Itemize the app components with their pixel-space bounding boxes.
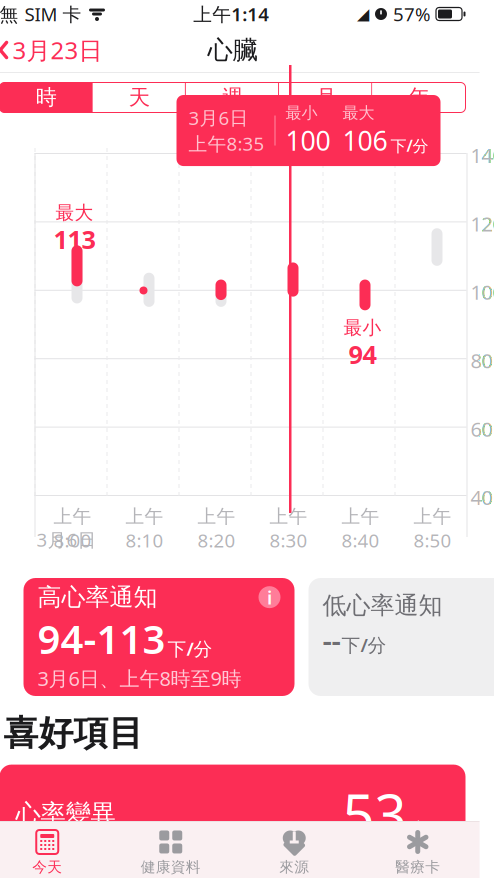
staticText: 113 [53,222,95,256]
staticText: 上午8:50 [413,505,451,553]
staticText: 94-113 [37,612,165,665]
staticText: 140 [470,142,494,169]
staticText: ◢ [357,5,369,23]
staticText: 最小 [343,316,381,339]
button[interactable]: 年 [372,82,465,112]
staticText: i [267,585,272,610]
staticText: 月 [315,84,336,111]
staticText: 60 [470,416,492,442]
staticText: 53 [342,777,406,851]
staticText: 40 [470,484,492,511]
staticText: 120 [470,210,494,237]
button[interactable]: 月 [279,82,372,112]
staticText: 心率變異 [15,798,115,829]
button[interactable]: 週 [186,82,279,112]
staticText: 下/分 [390,135,428,156]
staticText: 最大 [55,201,93,224]
staticText: 上午8:00 [53,505,91,553]
staticText: 3月6日、上午8時至9時 [37,665,241,692]
button[interactable]: 心率變異 [0,765,465,861]
staticText: 低心率通知 [322,591,442,620]
staticText: 57% [393,2,431,26]
staticText: 下/分 [341,632,386,657]
staticText: 今天 [32,858,62,876]
staticText: 心臟 [207,34,257,65]
staticText: 時 [36,84,57,111]
staticText: 健康資料 [141,858,201,876]
staticText: 80 [470,347,492,374]
button[interactable]: 3月23日 [0,28,114,72]
staticText: 上午8:35 [188,131,264,156]
staticText: 最小 [285,103,317,123]
staticText: 年 [408,84,429,111]
staticText: 上午8:20 [197,505,235,553]
staticText: 3月6日 [36,527,96,552]
staticText: 上午8:40 [341,505,379,553]
staticText: 94 [348,337,376,371]
staticText: 無 SIM 卡 [0,2,81,26]
staticText: -- [322,620,340,659]
staticText: 下/分 [167,636,212,661]
button[interactable]: 低心率通知 [308,578,494,696]
staticText: 上午8:30 [269,505,307,553]
staticText: 106 [342,123,387,158]
staticText: 100 [470,279,494,305]
staticText: 100 [285,123,330,158]
staticText: 最大 [342,103,374,123]
staticText: 來源 [279,858,309,876]
button[interactable]: 來源 [232,827,356,878]
button[interactable]: 健康資料 [109,827,232,878]
staticText: 上午1:14 [193,2,269,26]
button[interactable]: 今天 [0,827,109,878]
staticText: 醫療卡 [395,858,440,876]
staticText: 毫秒 [409,818,449,843]
button[interactable]: 高心率通知 [23,578,294,696]
staticText: 上午8:10 [125,505,163,553]
button[interactable]: 天 [93,82,186,112]
staticText: 喜好項目 [3,712,143,755]
button[interactable]: 醫療卡 [356,827,479,878]
staticText: 高心率通知 [37,582,157,612]
staticText: 3月6日 [188,105,248,130]
staticText: 週 [222,84,243,111]
button[interactable]: 時 [0,82,93,112]
staticText: 天 [129,84,150,111]
staticText: 3月23日 [12,34,102,66]
